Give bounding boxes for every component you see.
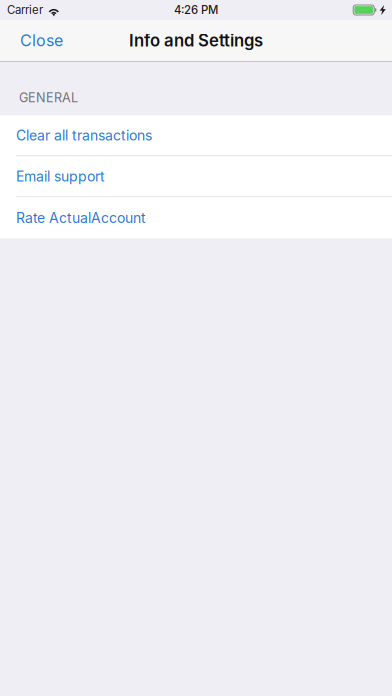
staticText: 4:26 PM bbox=[174, 3, 218, 17]
staticText: Clear all transactions bbox=[16, 127, 152, 144]
staticText: Carrier bbox=[7, 3, 43, 17]
button[interactable]: Rate ActualAccount bbox=[0, 197, 392, 238]
button[interactable]: Clear all transactions bbox=[0, 115, 392, 156]
staticText: Close bbox=[20, 31, 63, 50]
button[interactable]: Close bbox=[0, 20, 77, 61]
staticText: Info and Settings bbox=[129, 30, 263, 51]
staticText: GENERAL bbox=[19, 90, 78, 105]
staticText: Email support bbox=[16, 168, 105, 185]
button[interactable]: Email support bbox=[0, 156, 392, 197]
staticText: Rate ActualAccount bbox=[16, 209, 146, 226]
